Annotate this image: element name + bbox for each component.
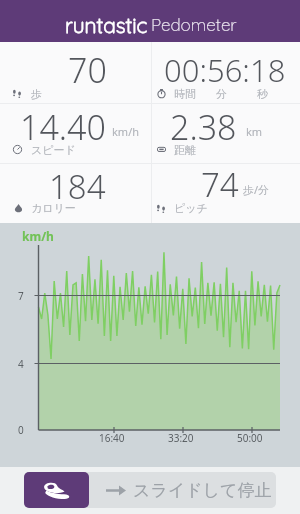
staticText: カロリー xyxy=(31,201,76,215)
button[interactable]: 00:56:18 xyxy=(0,49,286,91)
staticText: 184 xyxy=(49,164,106,209)
staticText: km/h xyxy=(112,124,140,139)
button[interactable]: Slide to stop xyxy=(24,472,89,508)
staticText: 70 xyxy=(68,47,107,93)
button[interactable]: 70 xyxy=(0,47,107,93)
staticText: 50:00 xyxy=(237,431,263,445)
staticText: 33:20 xyxy=(168,431,194,445)
staticText: km/h xyxy=(22,228,54,244)
staticText: 0 xyxy=(18,423,24,437)
staticText: 時間 xyxy=(174,87,196,101)
button[interactable]: スライドして停止 xyxy=(24,472,276,508)
button[interactable]: 14.40 xyxy=(0,104,106,150)
staticText: 14.40 xyxy=(20,104,106,150)
staticText: km xyxy=(246,124,263,139)
staticText: ピッチ xyxy=(174,201,208,215)
button[interactable]: 74 xyxy=(0,162,239,207)
staticText: 4 xyxy=(18,357,24,371)
staticText: 00:56:18 xyxy=(164,49,286,91)
staticText: 7 xyxy=(18,289,24,303)
staticText: スライドして停止 xyxy=(133,480,272,501)
staticText: runtastic xyxy=(65,12,148,38)
button[interactable]: 2.38 xyxy=(0,104,237,150)
staticText: 16:40 xyxy=(99,431,125,445)
staticText: 歩 xyxy=(31,87,42,101)
staticText: 秒 xyxy=(257,87,268,101)
staticText: 歩/分 xyxy=(243,182,270,197)
button[interactable]: 184 xyxy=(0,164,106,209)
staticText: Pedometer xyxy=(151,14,237,35)
staticText: 距離 xyxy=(174,143,196,157)
staticText: 74 xyxy=(201,162,239,207)
staticText: スピード xyxy=(31,143,76,157)
staticText: 2.38 xyxy=(170,104,237,150)
staticText: 分 xyxy=(216,87,227,101)
